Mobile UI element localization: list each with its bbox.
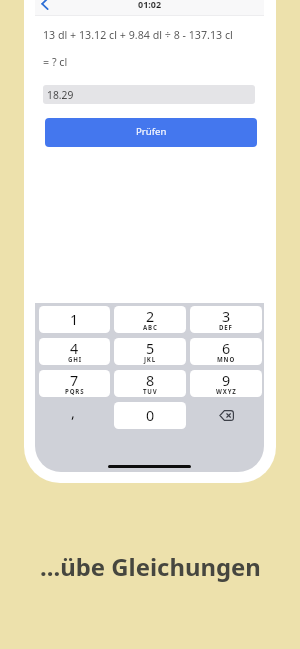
- button[interactable]: 3: [190, 306, 262, 333]
- button[interactable]: 5: [114, 338, 186, 365]
- staticText: ...übe Gleichungen: [40, 550, 261, 583]
- button[interactable]: Prüfen: [45, 118, 257, 147]
- staticText: 0: [146, 406, 155, 425]
- staticText: WXYZ: [216, 387, 237, 395]
- button[interactable]: 9: [190, 370, 262, 397]
- staticText: 01:02: [138, 0, 162, 10]
- button[interactable]: 0: [114, 402, 186, 429]
- staticText: = ? cl: [43, 55, 68, 70]
- staticText: GHI: [68, 355, 82, 363]
- button[interactable]: 2: [114, 306, 186, 333]
- button[interactable]: 18.29: [43, 85, 255, 104]
- staticText: DEF: [219, 323, 233, 331]
- button[interactable]: Back: [38, 0, 51, 10]
- button[interactable]: 8: [114, 370, 186, 397]
- staticText: 9: [222, 371, 231, 390]
- staticText: 2: [146, 307, 155, 326]
- button[interactable]: ,: [39, 402, 110, 429]
- button[interactable]: 6: [190, 338, 262, 365]
- staticText: 7: [70, 371, 79, 390]
- staticText: 8: [146, 371, 155, 390]
- staticText: MNO: [217, 355, 236, 363]
- staticText: PQRS: [65, 387, 85, 395]
- staticText: Prüfen: [136, 125, 167, 138]
- button[interactable]: Delete: [190, 402, 262, 429]
- staticText: 3: [222, 307, 231, 326]
- staticText: JKL: [144, 355, 157, 363]
- staticText: 6: [222, 339, 231, 358]
- staticText: 4: [70, 339, 79, 358]
- button[interactable]: 7: [39, 370, 110, 397]
- staticText: 13 dl + 13.12 cl + 9.84 dl ÷ 8 - 137.13 …: [43, 28, 233, 43]
- button[interactable]: 1: [39, 306, 110, 333]
- staticText: ,: [71, 403, 75, 422]
- staticText: 18.29: [47, 88, 74, 102]
- staticText: ABC: [143, 323, 158, 331]
- button[interactable]: 4: [39, 338, 110, 365]
- staticText: 5: [146, 339, 155, 358]
- staticText: TUV: [143, 387, 158, 395]
- staticText: 1: [70, 310, 79, 329]
